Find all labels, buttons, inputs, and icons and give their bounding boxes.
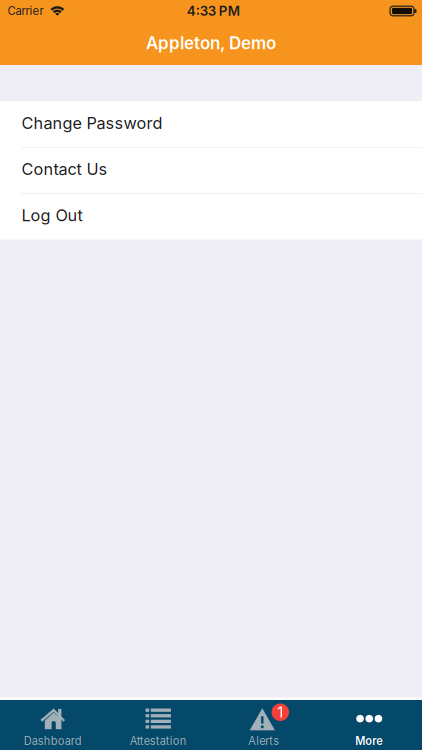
button[interactable]: More [316, 700, 422, 750]
button[interactable]: Log Out [0, 194, 422, 239]
button[interactable]: 1 [211, 700, 316, 750]
staticText: Alerts [248, 734, 279, 748]
staticText: Attestation [130, 734, 187, 748]
staticText: More [355, 734, 383, 748]
staticText: 1 [277, 703, 283, 721]
staticText: Log Out [22, 205, 83, 225]
staticText: Appleton, Demo [146, 33, 276, 53]
staticText: Change Password [22, 113, 163, 133]
button[interactable]: Contact Us [0, 148, 422, 193]
staticText: 4:33 PM [187, 3, 240, 19]
staticText: Dashboard [24, 734, 82, 748]
button[interactable]: Change Password [0, 101, 422, 147]
button[interactable]: Dashboard [0, 700, 105, 750]
button[interactable]: Attestation [105, 700, 211, 750]
staticText: Carrier [7, 4, 43, 18]
staticText: Contact Us [22, 159, 108, 179]
